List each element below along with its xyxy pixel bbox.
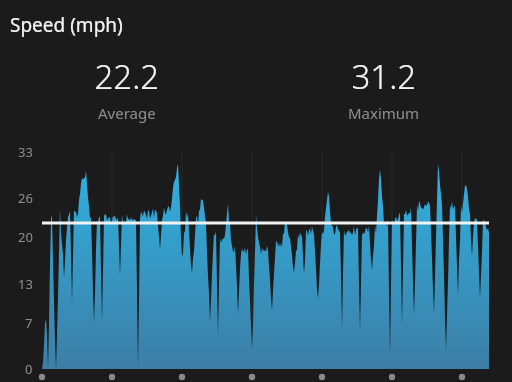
button[interactable]: Speed chart — [0, 0, 512, 382]
